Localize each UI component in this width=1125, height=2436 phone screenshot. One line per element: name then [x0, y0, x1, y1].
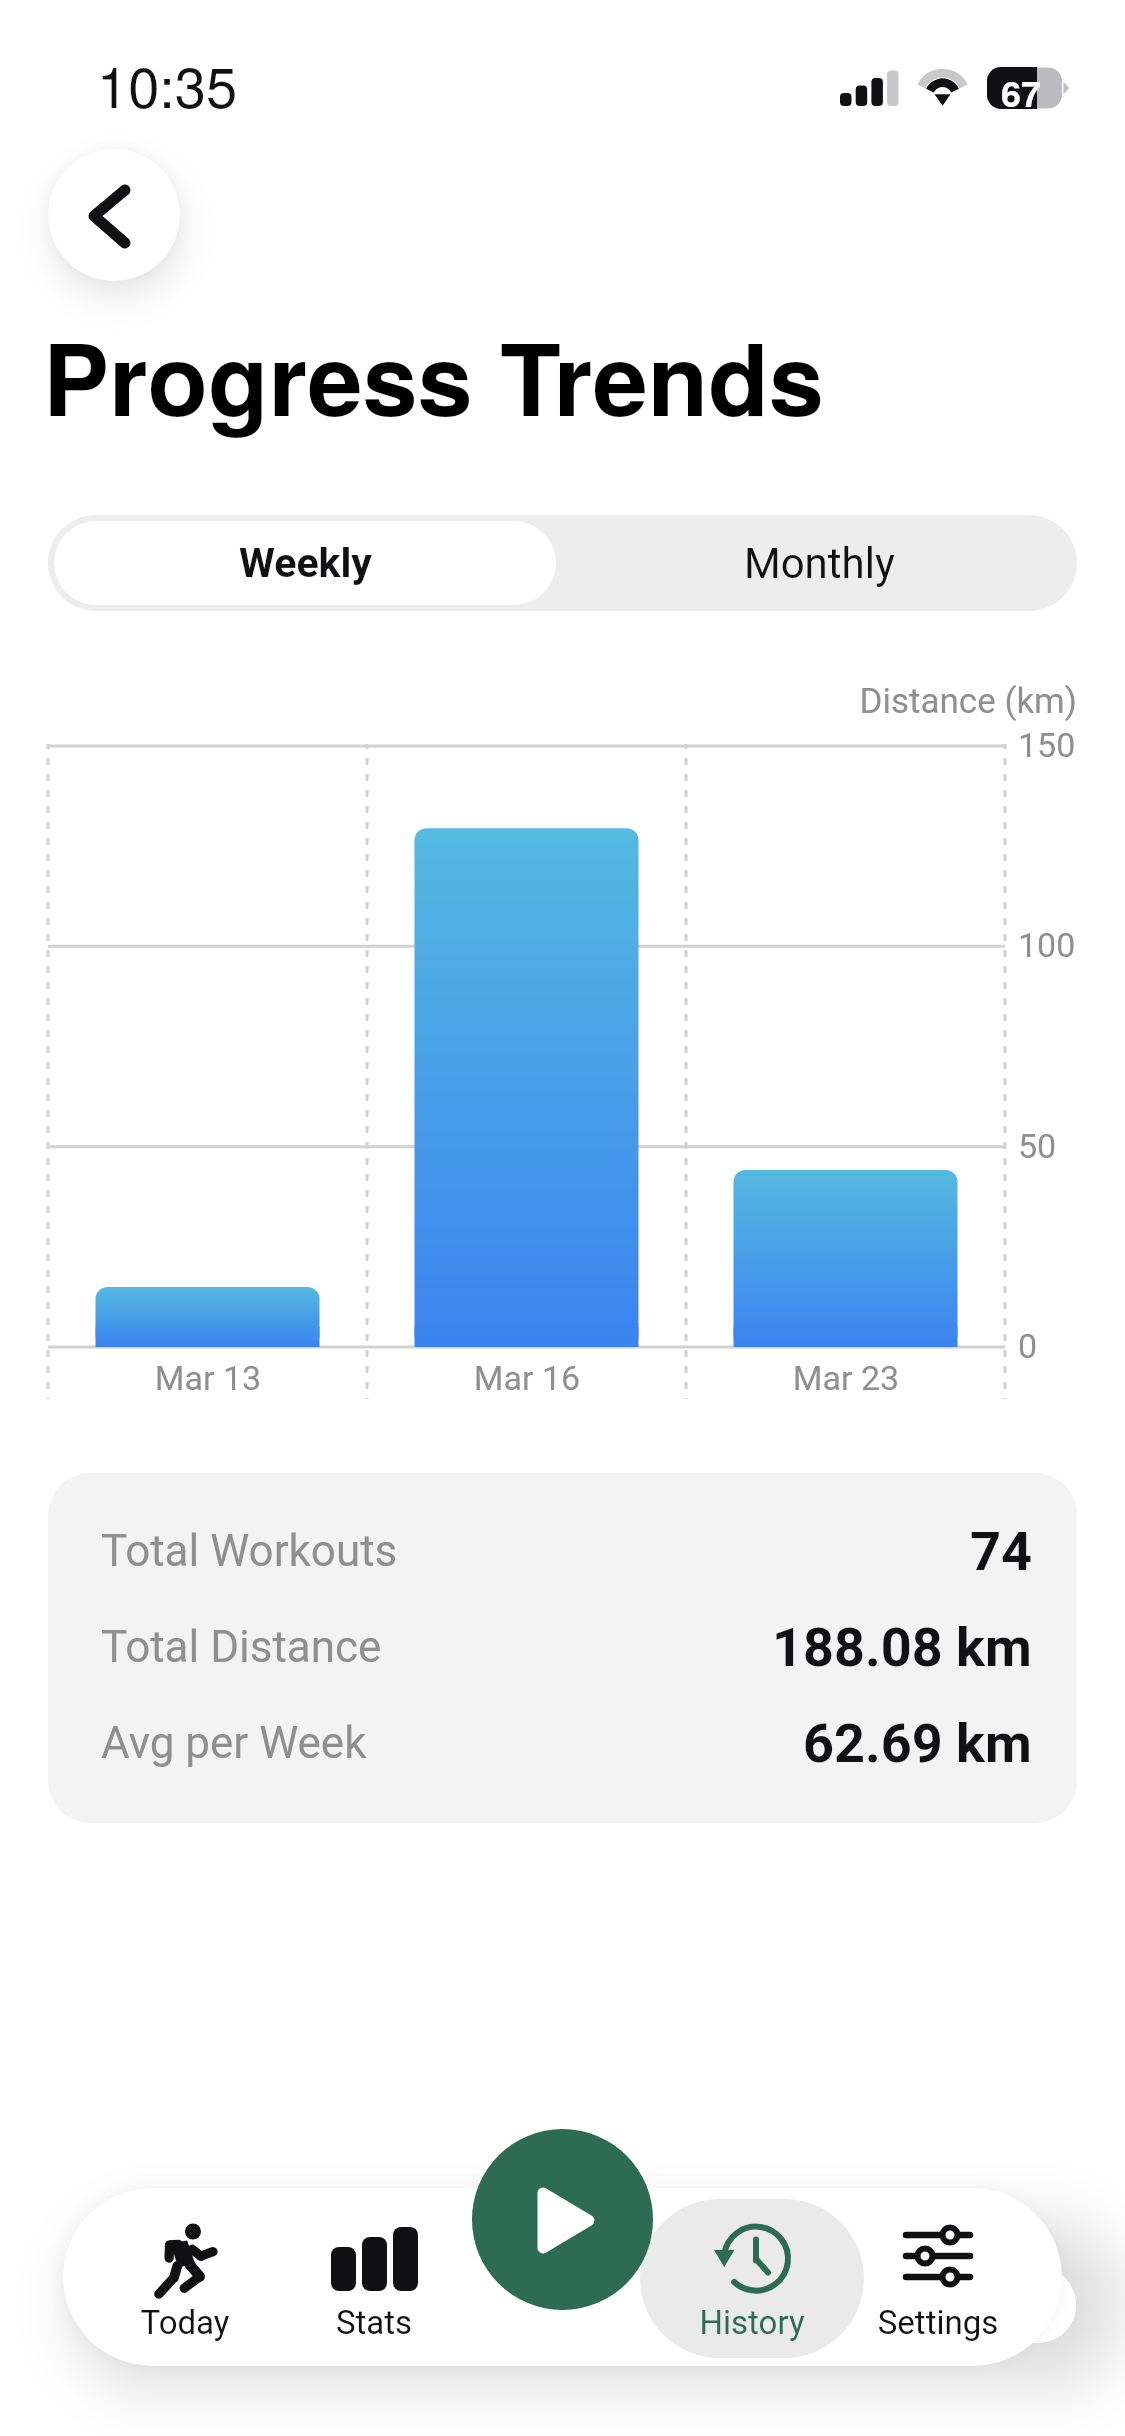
staticText: Progress Trends — [43, 305, 824, 447]
staticText: 67 — [1001, 66, 1042, 118]
staticText: Distance (km) — [677, 681, 1077, 722]
staticText: 188.08 km — [772, 1616, 1032, 1679]
staticText: 62.69 km — [803, 1712, 1032, 1775]
button[interactable]: Back — [48, 149, 180, 281]
staticText: Mar 16 — [417, 1358, 637, 1398]
staticText: History — [640, 2303, 864, 2342]
staticText: 10:35 — [97, 44, 238, 124]
staticText: Monthly — [744, 539, 895, 588]
staticText: Weekly — [239, 539, 372, 587]
staticText: Mar 23 — [736, 1358, 956, 1398]
staticText: 100 — [1018, 925, 1076, 965]
button[interactable]: Stats — [262, 2199, 486, 2358]
staticText: 0 — [1018, 1326, 1038, 1366]
staticText: Total Distance — [101, 1621, 382, 1673]
staticText: Total Workouts — [101, 1525, 398, 1577]
button[interactable]: Settings — [826, 2199, 1050, 2358]
staticText: Settings — [826, 2303, 1050, 2342]
staticText: Mar 13 — [98, 1358, 318, 1398]
staticText: 74 — [970, 1520, 1032, 1583]
button[interactable]: Monthly — [562, 515, 1077, 611]
button[interactable]: History — [640, 2199, 864, 2358]
staticText: 150 — [1018, 725, 1076, 765]
button[interactable]: Start workout — [472, 2129, 653, 2310]
staticText: Today — [73, 2303, 297, 2342]
button[interactable]: Today — [73, 2199, 297, 2358]
staticText: Stats — [262, 2303, 486, 2342]
staticText: 50 — [1018, 1126, 1057, 1166]
button[interactable]: Weekly — [54, 521, 556, 605]
staticText: Avg per Week — [101, 1717, 367, 1769]
